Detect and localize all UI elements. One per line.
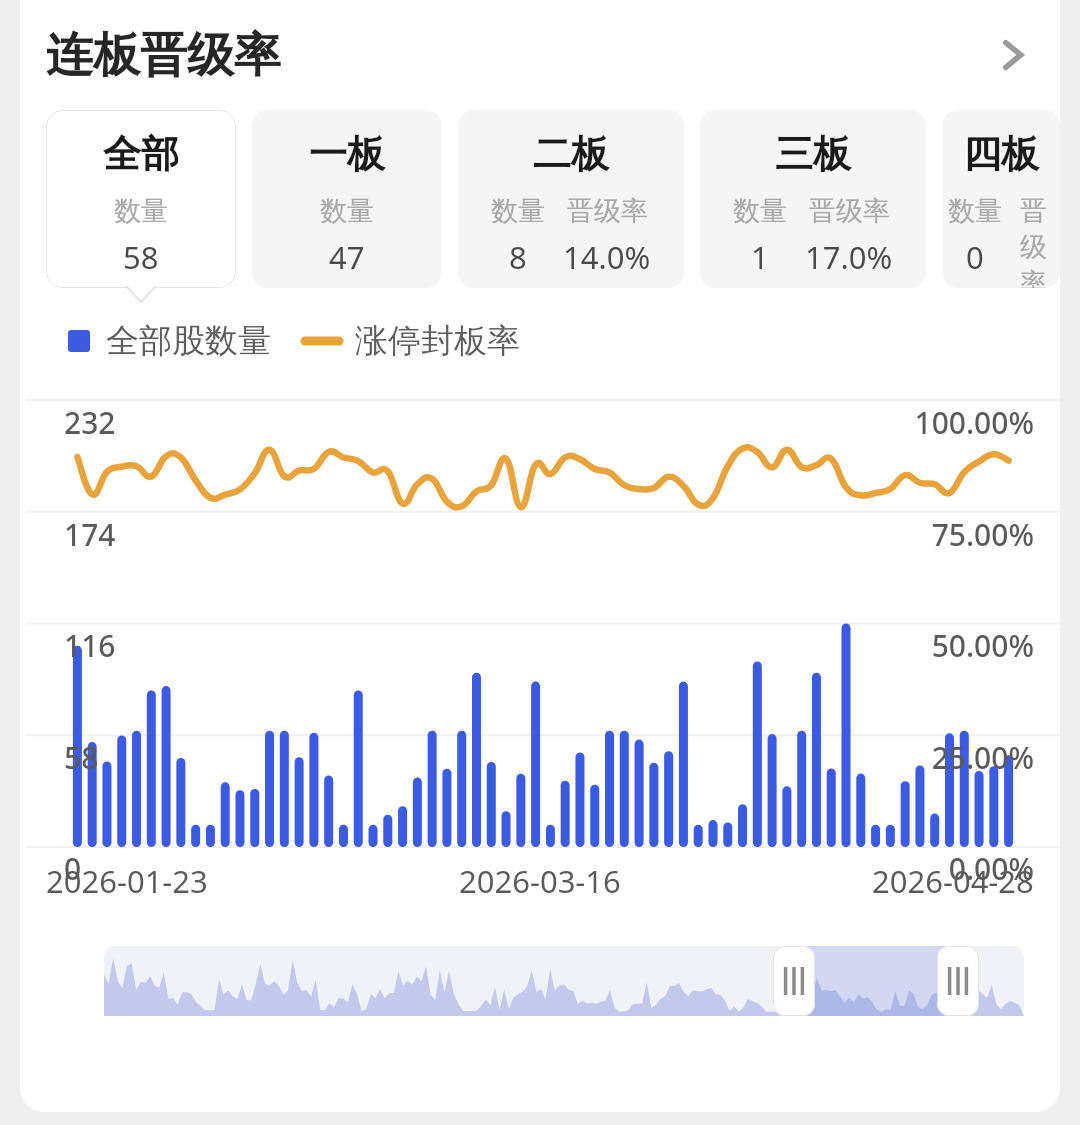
staticText: 二板 xyxy=(533,130,609,178)
staticText: 174 xyxy=(64,514,116,555)
staticText: 2026-01-23 xyxy=(46,860,208,902)
staticText: 47 xyxy=(329,236,365,278)
button[interactable]: 三板 xyxy=(700,110,926,288)
staticText: 数量 xyxy=(948,194,1002,228)
staticText: 116 xyxy=(64,625,116,666)
staticText: 8 xyxy=(509,236,527,278)
staticText: 四板 xyxy=(963,130,1039,178)
staticText: 涨停封板率 xyxy=(355,320,520,362)
staticText: 25.00% xyxy=(931,737,1034,778)
staticText: 0.00% xyxy=(948,848,1034,889)
staticText: 晋级率 xyxy=(567,194,648,228)
staticText: 58 xyxy=(64,737,99,778)
button[interactable]: 连板晋级率 xyxy=(20,0,1060,110)
staticText: 2026-03-16 xyxy=(459,860,621,902)
staticText: 75.00% xyxy=(931,514,1034,555)
staticText: 一板 xyxy=(309,130,385,178)
button[interactable]: 全部 xyxy=(46,110,236,288)
staticText: 数量 xyxy=(733,194,787,228)
staticText: 晋级率 xyxy=(1020,194,1054,288)
staticText: 全部股数量 xyxy=(106,320,271,362)
staticText: 2026-04-28 xyxy=(872,860,1034,902)
staticText: 17.0% xyxy=(805,236,893,278)
staticText: 数量 xyxy=(114,194,168,228)
staticText: 连板晋级率 xyxy=(46,26,281,85)
staticText: 0 xyxy=(966,236,984,278)
staticText: 50.00% xyxy=(931,625,1034,666)
staticText: 全部 xyxy=(103,130,179,178)
staticText: 100.00% xyxy=(914,402,1034,443)
button[interactable] xyxy=(104,946,1024,1016)
button[interactable]: Range start xyxy=(773,946,815,1016)
staticText: 14.0% xyxy=(563,236,651,278)
button[interactable]: 一板 xyxy=(252,110,442,288)
staticText: 数量 xyxy=(320,194,374,228)
staticText: 232 xyxy=(64,402,116,443)
other: More xyxy=(1000,33,1026,77)
staticText: 58 xyxy=(123,236,159,278)
button[interactable]: Range end xyxy=(937,946,979,1016)
staticText: 三板 xyxy=(775,130,851,178)
staticText: 数量 xyxy=(491,194,545,228)
staticText: 晋级率 xyxy=(809,194,890,228)
staticText: 1 xyxy=(751,236,769,278)
staticText: 0 xyxy=(64,848,82,889)
button[interactable]: 四板 xyxy=(942,110,1060,288)
button[interactable]: 二板 xyxy=(458,110,684,288)
